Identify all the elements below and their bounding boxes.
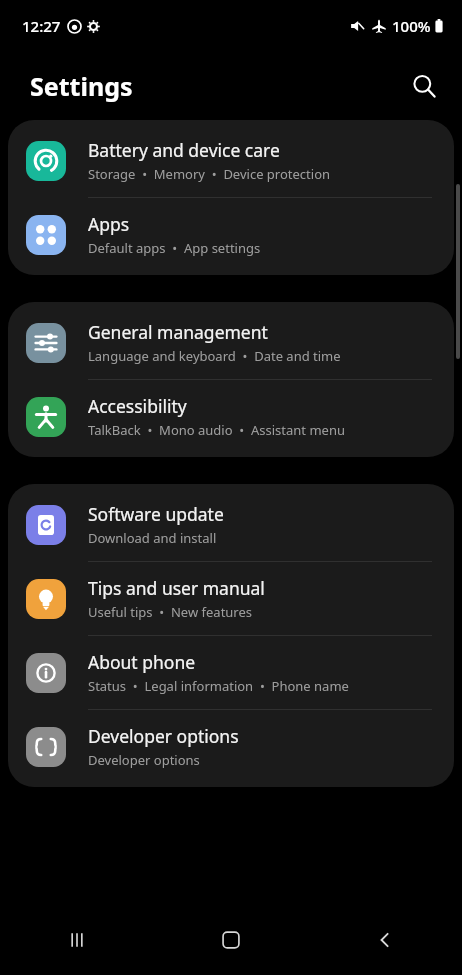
staticText: Default apps • App settings: [88, 239, 261, 257]
staticText: Settings: [30, 69, 133, 103]
button[interactable]: Tips and user manual: [8, 562, 454, 635]
staticText: Download and install: [88, 529, 217, 547]
staticText: General management: [88, 320, 268, 344]
button[interactable]: Battery and device care: [8, 124, 454, 197]
button[interactable]: Back: [308, 905, 462, 975]
staticText: Battery and device care: [88, 138, 280, 162]
staticText: Accessibility: [88, 394, 187, 418]
staticText: Language and keyboard • Date and time: [88, 347, 341, 365]
staticText: Storage • Memory • Device protection: [88, 165, 331, 183]
button[interactable]: About phone: [8, 636, 454, 709]
staticText: Tips and user manual: [88, 576, 265, 600]
staticText: TalkBack • Mono audio • Assistant menu: [88, 421, 345, 439]
staticText: Software update: [88, 502, 224, 526]
button[interactable]: Accessibility: [8, 380, 454, 453]
button[interactable]: Search: [400, 62, 448, 110]
staticText: 100%: [392, 16, 431, 36]
button[interactable]: Developer options: [8, 710, 454, 783]
button[interactable]: General management: [8, 306, 454, 379]
staticText: Apps: [88, 212, 130, 236]
button[interactable]: Recent apps: [0, 905, 154, 975]
staticText: Status • Legal information • Phone name: [88, 677, 349, 695]
button[interactable]: Software update: [8, 488, 454, 561]
staticText: About phone: [88, 650, 196, 674]
staticText: Useful tips • New features: [88, 603, 253, 621]
button[interactable]: Apps: [8, 198, 454, 271]
staticText: 12:27: [22, 16, 61, 36]
staticText: Developer options: [88, 724, 239, 748]
staticText: Developer options: [88, 751, 200, 769]
button[interactable]: Home: [154, 905, 308, 975]
